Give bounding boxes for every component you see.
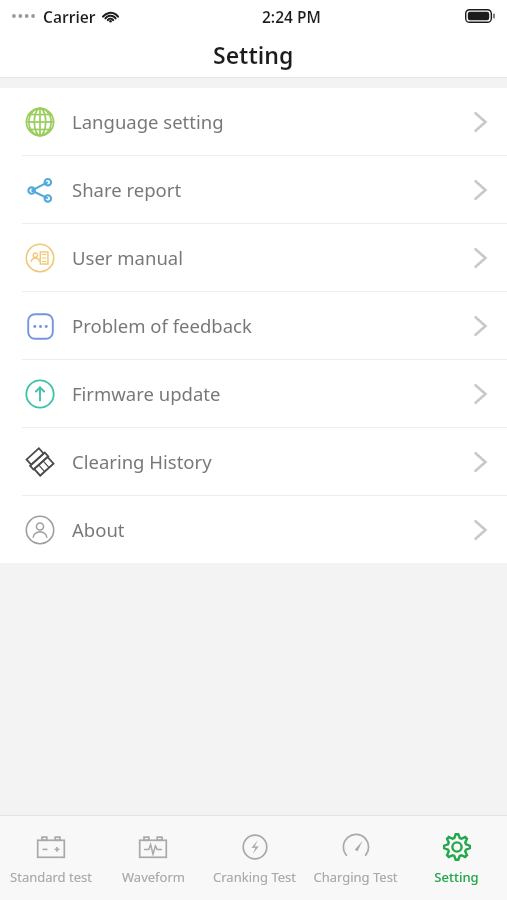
- staticText: Problem of feedback: [72, 313, 252, 338]
- button[interactable]: Cranking Test: [204, 816, 305, 900]
- button[interactable]: Clearing History: [0, 428, 507, 496]
- button[interactable]: Setting: [406, 816, 507, 900]
- staticText: Language setting: [72, 109, 224, 134]
- staticText: Standard test: [10, 868, 92, 886]
- button[interactable]: Standard test: [0, 816, 102, 900]
- button[interactable]: Language setting: [0, 88, 507, 156]
- staticText: Carrier: [43, 6, 96, 27]
- staticText: User manual: [72, 245, 183, 270]
- button[interactable]: User manual: [0, 224, 507, 292]
- staticText: Share report: [72, 177, 182, 202]
- staticText: Clearing History: [72, 449, 212, 474]
- staticText: Cranking Test: [213, 868, 296, 886]
- staticText: Charging Test: [313, 868, 398, 886]
- button[interactable]: About: [0, 496, 507, 563]
- staticText: Waveform: [122, 868, 185, 886]
- button[interactable]: Waveform: [102, 816, 204, 900]
- button[interactable]: Problem of feedback: [0, 292, 507, 360]
- button[interactable]: Charging Test: [305, 816, 406, 900]
- staticText: 2:24 PM: [262, 6, 321, 27]
- staticText: Setting: [434, 868, 479, 886]
- staticText: Setting: [213, 39, 294, 70]
- button[interactable]: Firmware update: [0, 360, 507, 428]
- button[interactable]: Share report: [0, 156, 507, 224]
- staticText: About: [72, 517, 125, 542]
- staticText: Firmware update: [72, 381, 221, 406]
